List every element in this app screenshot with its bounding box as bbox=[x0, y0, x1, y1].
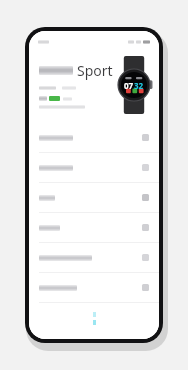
staticText: Sport bbox=[77, 61, 113, 80]
button[interactable]: Setting item bbox=[29, 123, 159, 153]
button[interactable]: Setting item bbox=[29, 273, 159, 303]
button[interactable]: Setting item bbox=[29, 183, 159, 213]
button[interactable]: Setting item bbox=[29, 243, 159, 273]
staticText: 32 bbox=[134, 80, 144, 91]
button[interactable]: Setting item bbox=[29, 153, 159, 183]
button[interactable]: Setting item bbox=[29, 213, 159, 243]
staticText: 07 bbox=[124, 80, 134, 91]
